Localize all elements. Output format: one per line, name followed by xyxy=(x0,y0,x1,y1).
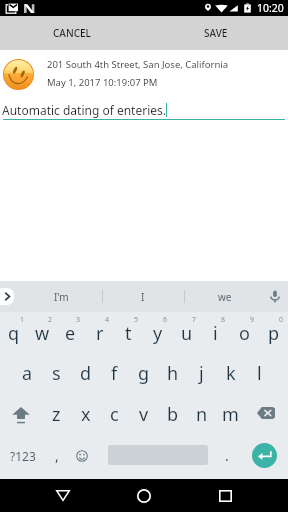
staticText: v xyxy=(139,402,149,427)
button[interactable]: u xyxy=(172,312,201,353)
staticText: b xyxy=(167,402,179,427)
staticText: j xyxy=(199,361,204,386)
button[interactable]: I xyxy=(102,281,184,312)
staticText: . xyxy=(225,446,229,465)
staticText: CANCEL xyxy=(53,26,91,40)
staticText: o xyxy=(239,321,250,346)
staticText: g xyxy=(138,361,150,386)
staticText: y xyxy=(153,321,163,346)
button[interactable]: b xyxy=(158,394,187,435)
staticText: 2 xyxy=(48,315,53,325)
button[interactable]: r xyxy=(85,312,114,353)
staticText: l xyxy=(257,361,262,386)
staticText: m xyxy=(222,402,239,427)
staticText: Automatic dating of enteries. xyxy=(2,102,166,118)
button[interactable]: ?123 xyxy=(0,435,46,476)
button[interactable]: m xyxy=(216,394,245,435)
staticText: d xyxy=(80,361,92,386)
button[interactable]: CANCEL xyxy=(0,16,144,50)
button[interactable]: . xyxy=(213,435,241,476)
button[interactable]: , xyxy=(46,435,68,476)
button[interactable]: w xyxy=(28,312,56,353)
button[interactable]: j xyxy=(187,353,216,394)
button[interactable]: Shift xyxy=(0,394,42,435)
staticText: h xyxy=(167,361,179,386)
button[interactable]: n xyxy=(187,394,216,435)
button[interactable]: l xyxy=(245,353,274,394)
staticText: 7 xyxy=(192,315,197,325)
staticText: 3 xyxy=(76,315,81,325)
staticText: x xyxy=(81,402,91,427)
button[interactable]: e xyxy=(56,312,85,353)
staticText: 8 xyxy=(221,315,226,325)
button[interactable]: z xyxy=(42,394,71,435)
staticText: q xyxy=(8,321,20,346)
staticText: SAVE xyxy=(204,26,228,40)
staticText: 6 xyxy=(163,315,168,325)
staticText: w xyxy=(35,321,50,346)
button[interactable]: I'm xyxy=(20,281,102,312)
staticText: k xyxy=(226,361,236,386)
staticText: f xyxy=(111,361,118,386)
button[interactable]: d xyxy=(71,353,100,394)
staticText: c xyxy=(110,402,119,427)
button[interactable]: k xyxy=(216,353,245,394)
button[interactable]: v xyxy=(129,394,158,435)
staticText: 9 xyxy=(250,315,255,325)
staticText: I xyxy=(141,290,145,304)
button[interactable]: g xyxy=(129,353,158,394)
staticText: r xyxy=(96,321,104,346)
button[interactable]: SAVE xyxy=(144,16,288,50)
staticText: s xyxy=(52,361,61,386)
staticText: May 1, 2017 10:19:07 PM xyxy=(47,76,158,89)
button[interactable]: we xyxy=(184,281,266,312)
button[interactable]: More suggestions xyxy=(0,288,14,305)
staticText: ?123 xyxy=(10,448,36,464)
button[interactable]: t xyxy=(114,312,143,353)
button[interactable]: Recent apps xyxy=(203,479,247,512)
button[interactable]: Enter xyxy=(252,443,277,468)
button[interactable]: Voice input xyxy=(262,281,288,312)
button[interactable]: q xyxy=(0,312,28,353)
button[interactable]: Home xyxy=(122,479,166,512)
staticText: , xyxy=(55,446,59,465)
staticText: u xyxy=(181,321,193,346)
button[interactable]: Back xyxy=(41,479,85,512)
staticText: 0 xyxy=(279,315,284,325)
staticText: we xyxy=(218,290,232,304)
staticText: 10:20 xyxy=(257,1,284,15)
staticText: t xyxy=(125,321,132,346)
button[interactable]: c xyxy=(100,394,129,435)
staticText: e xyxy=(65,321,76,346)
staticText: 1 xyxy=(20,315,25,325)
staticText: z xyxy=(52,402,61,427)
staticText: 201 South 4th Street, San Jose, Californ… xyxy=(47,58,229,71)
button[interactable]: a xyxy=(13,353,42,394)
button[interactable]: p xyxy=(259,312,288,353)
staticText: n xyxy=(196,402,208,427)
button[interactable]: y xyxy=(143,312,172,353)
staticText: I'm xyxy=(54,290,69,304)
staticText: 4 xyxy=(105,315,110,325)
staticText: a xyxy=(22,361,33,386)
button[interactable]: o xyxy=(230,312,259,353)
button[interactable]: i xyxy=(201,312,230,353)
button[interactable]: Backspace xyxy=(245,394,288,435)
button[interactable]: x xyxy=(71,394,100,435)
button[interactable]: h xyxy=(158,353,187,394)
button[interactable]: f xyxy=(100,353,129,394)
button[interactable]: s xyxy=(42,353,71,394)
staticText: p xyxy=(268,321,280,346)
button[interactable]: Emoji xyxy=(68,435,96,476)
staticText: i xyxy=(213,321,218,346)
staticText: 5 xyxy=(134,315,139,325)
